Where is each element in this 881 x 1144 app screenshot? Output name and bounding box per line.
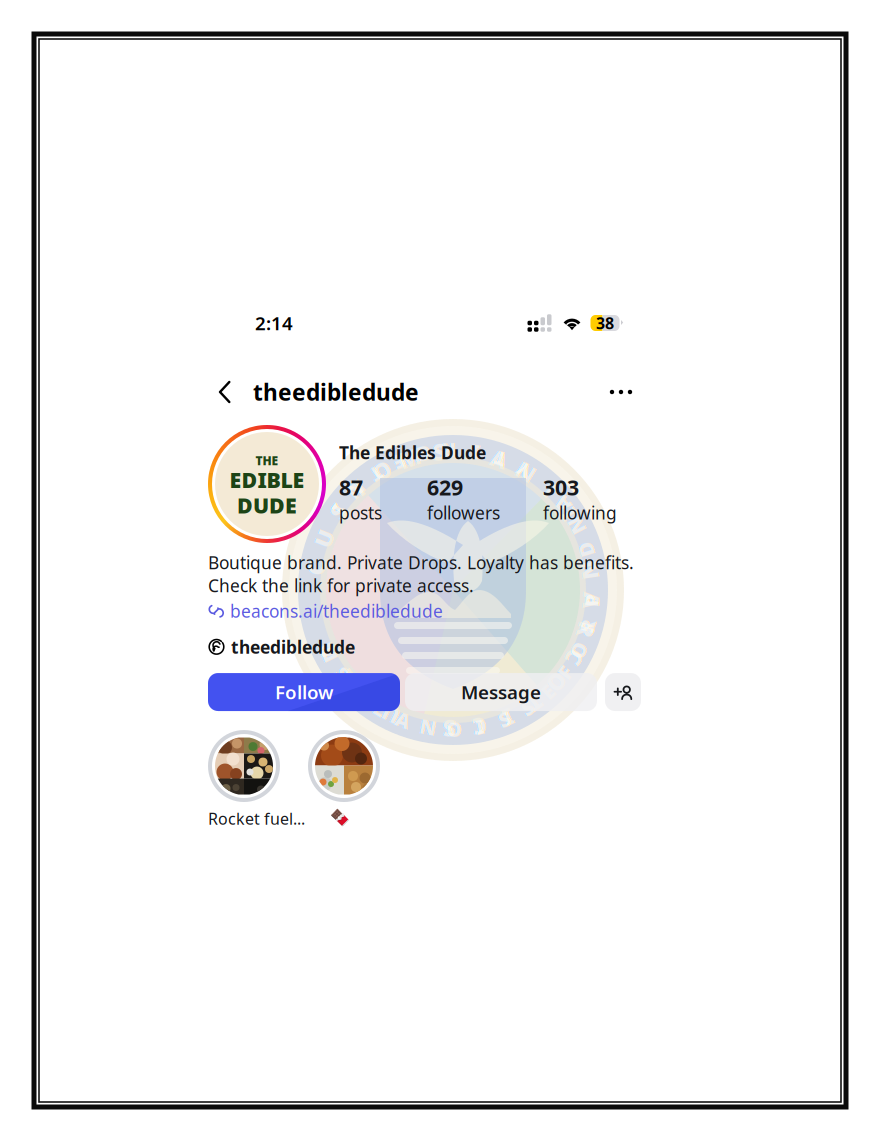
staticText: C [472, 711, 487, 741]
button[interactable]: Back [208, 373, 241, 411]
staticText: N [581, 555, 600, 585]
staticText: T [543, 475, 556, 505]
staticText: R [580, 613, 594, 639]
staticText: I [503, 702, 513, 733]
button[interactable]: beacons.ai/theedibledude [208, 600, 443, 622]
staticText [542, 472, 547, 498]
staticText: A [584, 585, 600, 615]
staticText [416, 710, 422, 740]
staticText: N [420, 713, 437, 740]
staticText: A [491, 444, 507, 474]
staticText: R [579, 615, 594, 645]
staticText: A [555, 491, 570, 517]
button[interactable]: Profile photo [208, 425, 326, 543]
staticText: Boutique brand. Private Drops. Loyalty h… [208, 551, 634, 574]
staticText: 87 [339, 473, 363, 501]
staticText: N [356, 683, 375, 713]
staticText: Y [517, 457, 530, 483]
staticText: L [374, 695, 386, 722]
staticText: S [332, 497, 345, 527]
staticText: S [521, 694, 533, 721]
staticText: beacons.ai/theedibledude [230, 599, 443, 622]
button[interactable]: Follow [208, 673, 400, 711]
staticText [580, 525, 586, 556]
button[interactable]: 🍫 [308, 730, 408, 826]
staticText: 629 [427, 473, 463, 501]
button[interactable]: Message [405, 673, 597, 711]
staticText: T [370, 461, 382, 487]
staticText: following [543, 501, 617, 524]
staticText: theedibledude [231, 635, 355, 658]
staticText: I [564, 498, 574, 529]
staticText: Message [461, 680, 541, 704]
button[interactable]: Discover people [605, 673, 641, 711]
staticText: O [548, 667, 566, 697]
button[interactable]: Rocket fuel... [208, 730, 308, 829]
button[interactable]: More options [604, 373, 638, 411]
staticText [466, 437, 472, 467]
staticText: EDIBLE [229, 466, 304, 494]
staticText: U [382, 699, 399, 729]
staticText: F [559, 659, 570, 686]
staticText: O [570, 637, 586, 663]
staticText: T [494, 446, 506, 472]
staticText: U [315, 523, 332, 553]
staticText: M [398, 443, 420, 473]
staticText: N [516, 457, 535, 487]
staticText: I [475, 713, 484, 740]
staticText: O [373, 455, 391, 486]
staticText: theedibledude [253, 377, 419, 407]
staticText: A [396, 707, 411, 733]
staticText: S [336, 661, 348, 687]
staticText: posts [339, 501, 382, 524]
button[interactable]: 87 [339, 473, 427, 524]
staticText: THE [255, 453, 278, 469]
staticText: Rocket fuel... [208, 808, 305, 829]
staticText: The Edibles Dude [339, 441, 486, 464]
staticText: followers [427, 501, 500, 524]
staticText: S [432, 437, 445, 467]
staticText: N [348, 477, 365, 504]
staticText: G [416, 441, 431, 467]
staticText: T [322, 636, 335, 666]
staticText: I [339, 661, 349, 691]
button[interactable]: theedibledude [208, 636, 355, 658]
staticText: I [470, 439, 479, 466]
button[interactable]: 629 [427, 473, 543, 524]
staticText: S [498, 706, 510, 732]
staticText: I [355, 680, 364, 706]
staticText: P [585, 587, 598, 614]
staticText: R [442, 438, 456, 464]
staticText: Follow [275, 680, 333, 704]
staticText: 303 [543, 473, 579, 501]
staticText: 🍫 [330, 808, 350, 826]
staticText: N [568, 512, 585, 539]
staticText: 38 [596, 312, 614, 334]
staticText: C [567, 643, 582, 673]
staticText: D [578, 536, 593, 563]
button[interactable]: 303 [543, 473, 617, 524]
staticText: 2:14 [255, 311, 293, 335]
staticText: I [335, 497, 344, 523]
staticText: Check the link for private access. [208, 574, 474, 597]
staticText: C [308, 553, 323, 583]
staticText: O [446, 716, 462, 742]
staticText: E [393, 449, 404, 475]
staticText: DUDE [237, 491, 297, 519]
staticText [589, 561, 594, 588]
staticText: S [443, 714, 456, 744]
staticText: T [528, 687, 541, 718]
staticText: M [319, 639, 338, 665]
staticText: T [351, 474, 364, 504]
